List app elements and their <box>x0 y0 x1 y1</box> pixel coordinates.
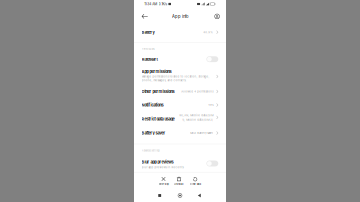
staticText: MIUI Battery saver <box>190 131 213 135</box>
button[interactable]: Home <box>175 190 185 200</box>
staticText: 0.1K/s <box>158 2 167 6</box>
staticText: Force stop <box>158 183 168 185</box>
staticText: Manage permissions related to location, … <box>142 75 210 78</box>
button[interactable]: Uninstall <box>171 175 186 186</box>
staticText: phone, messages, and contacts. <box>142 79 187 82</box>
button[interactable]: Force stop <box>156 175 171 186</box>
button[interactable]: App security <box>212 12 222 21</box>
button[interactable]: Back <box>139 12 150 21</box>
staticText: 11:34 AM <box>144 2 157 6</box>
staticText: Blur app previews <box>142 160 174 164</box>
staticText: Permissions <box>142 48 155 51</box>
staticText: App permissions <box>142 69 172 74</box>
staticText: WLAN, Mobile data (SIM <box>179 114 213 117</box>
button[interactable]: Autostart <box>134 0 226 202</box>
button[interactable]: Other permissions <box>134 0 226 202</box>
staticText: Uninstall <box>174 183 184 185</box>
button[interactable]: Notifications <box>134 0 226 202</box>
button[interactable]: Back <box>195 191 204 200</box>
staticText: Battery <box>142 30 155 35</box>
button[interactable]: Blur app previews <box>134 0 226 202</box>
button[interactable]: App permissions <box>134 0 226 202</box>
staticText: Blur app previews in Recents <box>142 166 184 169</box>
staticText: Battery saver <box>142 131 166 135</box>
staticText: Notifications <box>142 103 164 107</box>
button[interactable]: Restrict data usage <box>134 0 226 202</box>
button[interactable]: Recent apps <box>155 191 164 200</box>
button[interactable]: Battery saver <box>134 0 226 202</box>
staticText: 1), Mobile data (SIM 2) <box>182 118 213 121</box>
button[interactable]: Clear data <box>188 175 203 186</box>
staticText: 40.9% <box>203 31 213 34</box>
staticText: Allowed 4 permissions <box>181 90 213 93</box>
staticText: Autostart <box>142 57 158 62</box>
staticText: Advanced settings <box>142 149 160 152</box>
staticText: Restrict data usage <box>142 117 175 121</box>
staticText: App info <box>172 14 188 19</box>
staticText: Other permissions <box>142 89 175 94</box>
staticText: Clear data <box>190 183 201 185</box>
staticText: Yes <box>208 103 213 107</box>
button[interactable]: Battery <box>134 0 226 202</box>
